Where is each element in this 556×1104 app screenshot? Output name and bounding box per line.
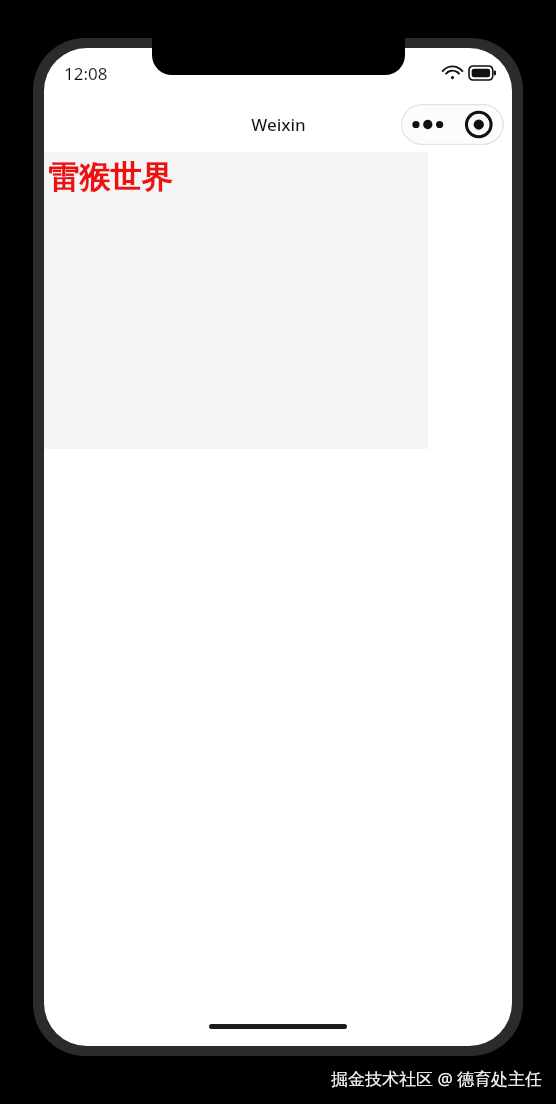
button[interactable]: 雷猴世界: [48, 158, 172, 197]
staticText: Weixin: [251, 113, 306, 136]
staticText: 掘金技术社区 @ 德育处主任: [331, 1067, 543, 1090]
button[interactable]: Mini program menu: [401, 104, 504, 145]
staticText: 12:08: [64, 62, 108, 85]
